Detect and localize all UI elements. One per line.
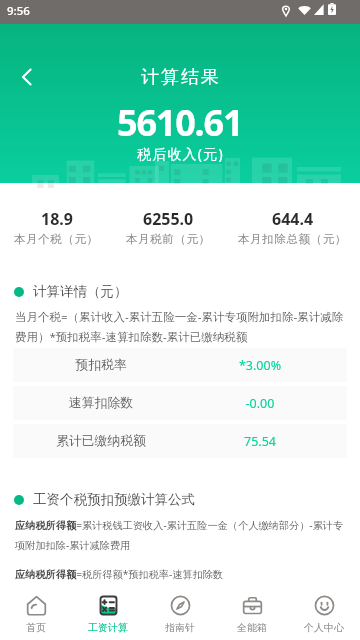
staticText: 首页 [26,621,46,634]
staticText: 计算详情（元） [33,283,128,300]
staticText: 644.4 [272,208,314,230]
button[interactable]: 全能箱 [216,582,288,640]
button[interactable]: 首页 [0,582,72,640]
staticText: 应纳税所得额=税所得额*预扣税率-速算扣除数 [15,567,224,581]
staticText: 75.54 [173,433,347,450]
staticText: 工资个税预扣预缴计算公式 [33,491,195,508]
staticText: 9:56 [7,3,30,19]
button[interactable]: 预扣税率 [13,348,347,382]
button[interactable]: 累计已缴纳税额 [13,424,347,458]
staticText: 本月税前（元） [126,232,211,246]
button[interactable]: 工资计算 [72,582,144,640]
staticText: 本月扣除总额（元） [238,232,347,246]
staticText: 6255.0 [143,208,194,230]
staticText: 全能箱 [237,621,267,634]
staticText: 预扣税率 [13,357,189,373]
staticText: 指南针 [165,621,195,634]
staticText: -0.00 [173,395,347,412]
staticText: 计算结果 [140,66,220,89]
staticText: 应纳税所得额=累计税钱工资收入-累计五险一金（个人缴纳部分）-累计专项附加扣除-… [15,518,345,552]
staticText: *3.00% [173,357,347,374]
staticText: 本月个税（元） [14,232,99,246]
staticText: 累计已缴纳税额 [13,433,189,449]
button[interactable]: 个人中心 [288,582,360,640]
button[interactable]: 返回 [5,55,49,99]
staticText: 当月个税=（累计收入-累计五险一金-累计专项附加扣除-累计减除费用）*预扣税率-… [15,309,345,344]
staticText: 工资计算 [88,621,128,634]
staticText: 税后收入(元) [137,144,224,163]
staticText: 18.9 [41,208,73,230]
staticText: 速算扣除数 [13,395,189,411]
button[interactable]: 速算扣除数 [13,386,347,420]
staticText: 5610.61 [117,98,243,147]
staticText: 个人中心 [304,621,344,634]
button[interactable]: 指南针 [144,582,216,640]
